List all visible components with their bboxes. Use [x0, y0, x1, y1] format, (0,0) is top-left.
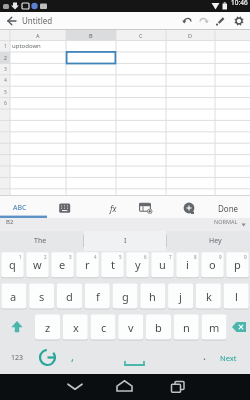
button[interactable]: a: [1, 284, 26, 309]
staticText: e: [59, 257, 66, 272]
staticText: 3: [4, 66, 7, 73]
staticText: Hey: [209, 236, 222, 246]
staticText: 5: [4, 89, 7, 96]
staticText: 1: [19, 254, 22, 260]
button[interactable]: [180, 13, 196, 29]
staticText: NORMAL: [214, 218, 238, 225]
staticText: 123: [11, 353, 24, 363]
button[interactable]: [53, 197, 78, 218]
staticText: 4: [4, 77, 7, 84]
staticText: 3: [69, 254, 72, 260]
button[interactable]: The: [0, 231, 80, 251]
staticText: p: [234, 257, 241, 272]
staticText: 8: [194, 254, 197, 260]
button[interactable]: [0, 314, 33, 339]
button[interactable]: u: [151, 252, 174, 277]
staticText: 10:46: [231, 0, 248, 7]
button[interactable]: r: [76, 252, 99, 277]
button[interactable]: i: [176, 252, 199, 277]
staticText: s: [39, 289, 45, 304]
staticText: h: [149, 289, 156, 304]
button[interactable]: d: [57, 284, 82, 309]
button[interactable]: Next: [188, 348, 250, 368]
staticText: ABC: [13, 203, 27, 213]
button[interactable]: q: [1, 252, 24, 277]
button[interactable]: l: [224, 284, 249, 309]
staticText: 9: [219, 254, 222, 260]
staticText: g: [122, 289, 129, 304]
staticText: n: [183, 320, 190, 335]
staticText: D: [188, 32, 193, 39]
staticText: B2: [6, 218, 14, 226]
button[interactable]: k: [196, 284, 221, 309]
button[interactable]: ,: [65, 346, 79, 366]
button[interactable]: 123: [0, 348, 57, 368]
button[interactable]: [55, 374, 95, 400]
staticText: j: [179, 289, 182, 304]
button[interactable]: [157, 374, 197, 400]
staticText: 5: [119, 254, 122, 260]
staticText: d: [66, 289, 73, 304]
staticText: Untitled: [22, 15, 53, 26]
button[interactable]: e: [51, 252, 74, 277]
button[interactable]: p: [226, 252, 249, 277]
button[interactable]: b: [146, 315, 171, 340]
staticText: ,: [71, 349, 74, 364]
staticText: 1: [4, 43, 7, 50]
staticText: r: [85, 257, 90, 272]
button[interactable]: [133, 197, 158, 218]
button[interactable]: I: [85, 231, 165, 251]
staticText: o: [209, 257, 216, 272]
button[interactable]: x: [63, 315, 88, 340]
staticText: The: [34, 236, 47, 246]
staticText: 0: [244, 254, 247, 260]
button[interactable]: [105, 374, 145, 400]
button[interactable]: z: [35, 315, 60, 340]
staticText: i: [186, 257, 189, 272]
staticText: q: [9, 257, 16, 272]
staticText: fx: [110, 203, 117, 214]
staticText: l: [235, 289, 238, 304]
button[interactable]: [213, 13, 229, 29]
button[interactable]: [177, 197, 202, 218]
button[interactable]: g: [113, 284, 138, 309]
button[interactable]: fx: [73, 198, 153, 218]
button[interactable]: [197, 13, 213, 29]
button[interactable]: ABC: [0, 198, 60, 218]
staticText: Next: [220, 353, 237, 363]
button[interactable]: j: [168, 284, 193, 309]
staticText: f: [96, 289, 100, 304]
button[interactable]: [34, 345, 60, 371]
staticText: c: [101, 320, 107, 335]
button[interactable]: s: [29, 284, 54, 309]
staticText: 2: [44, 254, 47, 260]
button[interactable]: t: [101, 252, 124, 277]
staticText: 6: [144, 254, 147, 260]
staticText: a: [10, 289, 17, 304]
button[interactable]: c: [91, 315, 116, 340]
staticText: Done: [218, 203, 239, 214]
button[interactable]: [2, 12, 20, 30]
button[interactable]: w: [26, 252, 49, 277]
staticText: .: [203, 348, 206, 363]
staticText: w: [33, 257, 42, 272]
button[interactable]: .: [197, 345, 211, 365]
button[interactable]: Done: [188, 198, 250, 218]
staticText: y: [135, 257, 141, 272]
button[interactable]: m: [202, 315, 227, 340]
button[interactable]: Hey: [175, 231, 250, 251]
staticText: B: [89, 32, 93, 39]
staticText: v: [128, 320, 134, 335]
button[interactable]: o: [201, 252, 224, 277]
staticText: 2: [4, 55, 7, 62]
button[interactable]: [86, 345, 186, 371]
button[interactable]: h: [140, 284, 165, 309]
button[interactable]: v: [118, 315, 143, 340]
staticText: b: [155, 320, 162, 335]
button[interactable]: [228, 314, 250, 339]
button[interactable]: n: [174, 315, 199, 340]
button[interactable]: [66, 52, 116, 63]
button[interactable]: y: [126, 252, 149, 277]
button[interactable]: [231, 13, 247, 29]
button[interactable]: f: [85, 284, 110, 309]
